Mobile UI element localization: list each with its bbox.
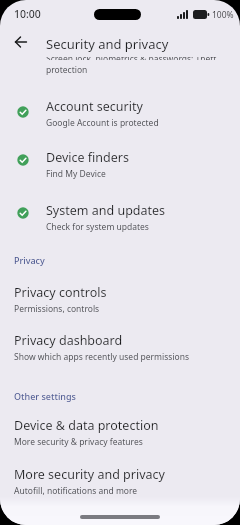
- button[interactable]: System and updates: [0, 202, 240, 252]
- staticText: Account security: [46, 98, 143, 115]
- button[interactable]: Device & data protection: [0, 417, 240, 467]
- button[interactable]: [15, 36, 27, 48]
- staticText: Google Account is protected: [46, 117, 159, 129]
- staticText: Privacy dashboard: [14, 332, 123, 349]
- staticText: Privacy controls: [14, 284, 107, 301]
- staticText: protection: [46, 64, 88, 76]
- staticText: Permissions, controls: [14, 303, 100, 315]
- staticText: Find My Device: [46, 168, 106, 180]
- staticText: Autofill, notifications and more: [14, 485, 138, 497]
- button[interactable]: Privacy controls: [0, 284, 240, 334]
- staticText: Other settings: [14, 390, 76, 402]
- staticText: More security & privacy features: [14, 436, 143, 448]
- button[interactable]: More security and privacy: [0, 466, 240, 516]
- staticText: System and updates: [46, 202, 166, 219]
- staticText: Check for system updates: [46, 221, 149, 233]
- staticText: Screen lock, biometrics & passwords; The…: [46, 57, 217, 60]
- button[interactable]: Device finders: [0, 149, 240, 199]
- staticText: Security and privacy: [46, 35, 169, 53]
- staticText: 10:00: [14, 7, 41, 21]
- staticText: Privacy: [14, 254, 45, 266]
- staticText: Device finders: [46, 149, 129, 166]
- staticText: Show which apps recently used permission…: [14, 351, 190, 363]
- staticText: Device & data protection: [14, 417, 159, 434]
- button[interactable]: Account security: [0, 98, 240, 148]
- staticText: More security and privacy: [14, 466, 165, 483]
- staticText: 100%: [212, 9, 234, 21]
- button[interactable]: Privacy dashboard: [0, 332, 240, 382]
